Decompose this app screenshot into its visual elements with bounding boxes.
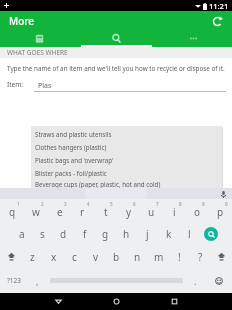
staticText: 8 xyxy=(179,201,182,207)
button[interactable]: Emoji xyxy=(206,268,232,293)
staticText: g xyxy=(102,227,109,241)
staticText: p xyxy=(217,205,224,219)
button[interactable]: Plastic bags and 'overwrap' xyxy=(31,153,222,166)
staticText: 0 xyxy=(225,201,228,207)
staticText: Type the name of an item and we'll tell … xyxy=(7,64,225,73)
staticText: k xyxy=(166,227,172,241)
staticText: 11:21 xyxy=(209,1,229,11)
staticText: i xyxy=(173,205,176,219)
button[interactable]: f xyxy=(74,222,95,245)
staticText: Blister packs - foil/plastic xyxy=(35,169,107,177)
button[interactable]: ? xyxy=(190,245,211,268)
staticText: t xyxy=(104,205,108,219)
staticText: ?123 xyxy=(7,276,21,285)
button[interactable]: t xyxy=(94,199,117,222)
button[interactable]: Back xyxy=(29,293,87,310)
button[interactable]: v xyxy=(85,245,106,268)
button[interactable]: n xyxy=(127,245,148,268)
staticText: c xyxy=(72,250,77,264)
button[interactable]: Schedule xyxy=(0,30,78,47)
staticText: v xyxy=(93,250,99,264)
button[interactable]: Blister packs - foil/plastic xyxy=(31,166,222,179)
button[interactable]: c xyxy=(64,245,85,268)
button[interactable]: w xyxy=(24,199,48,222)
button[interactable]: Shift xyxy=(0,245,22,268)
button[interactable]: Straws and plastic utensils xyxy=(31,127,222,140)
button[interactable]: u xyxy=(140,199,163,222)
button[interactable]: m xyxy=(148,245,169,268)
button[interactable]: Home xyxy=(87,293,145,310)
staticText: . xyxy=(194,275,197,287)
button[interactable]: Voice input xyxy=(218,189,228,199)
staticText: w xyxy=(32,205,40,219)
button[interactable]: Beverage cups (paper, plastic, hot and c… xyxy=(31,179,222,188)
button[interactable]: ! xyxy=(169,245,190,268)
staticText: l xyxy=(188,227,191,241)
staticText: s xyxy=(40,227,45,241)
staticText: d xyxy=(60,227,67,241)
staticText: f xyxy=(83,227,87,241)
staticText: WHAT GOES WHERE xyxy=(7,48,68,57)
staticText: 9 xyxy=(202,201,205,207)
staticText: 6 xyxy=(133,201,136,207)
button[interactable]: q xyxy=(0,199,24,222)
button[interactable]: o xyxy=(186,199,209,222)
button[interactable]: . xyxy=(185,268,206,293)
staticText: 4 xyxy=(87,201,90,207)
button[interactable]: j xyxy=(137,222,158,245)
button[interactable]: Search xyxy=(200,222,221,245)
staticText: More xyxy=(9,14,35,28)
staticText: Plas xyxy=(38,81,52,91)
button[interactable]: , xyxy=(27,268,48,293)
button[interactable]: i xyxy=(163,199,186,222)
staticText: 1 xyxy=(17,201,20,207)
button[interactable]: k xyxy=(158,222,179,245)
button[interactable]: Refresh xyxy=(209,13,225,29)
staticText: 3 xyxy=(64,201,67,207)
staticText: ? xyxy=(198,250,203,264)
staticText: , xyxy=(36,275,39,287)
staticText: Plastic bags and 'overwrap' xyxy=(35,156,114,164)
button[interactable]: More xyxy=(155,30,232,47)
button[interactable]: p xyxy=(209,199,232,222)
button[interactable]: a xyxy=(11,222,32,245)
button[interactable]: h xyxy=(116,222,137,245)
staticText: 2 xyxy=(41,201,44,207)
button[interactable]: e xyxy=(48,199,71,222)
button[interactable]: ?123 xyxy=(0,268,27,293)
staticText: 7 xyxy=(156,201,159,207)
staticText: Beverage cups (paper, plastic, hot and c… xyxy=(35,180,161,188)
button[interactable]: d xyxy=(53,222,74,245)
button[interactable]: r xyxy=(71,199,94,222)
staticText: y xyxy=(126,205,132,219)
button[interactable]: x xyxy=(43,245,64,268)
button[interactable]: z xyxy=(22,245,43,268)
button[interactable]: Space xyxy=(48,268,185,293)
staticText: r xyxy=(80,205,85,219)
button[interactable]: Recent apps xyxy=(145,293,203,310)
staticText: Clothes hangers (plastic) xyxy=(35,143,107,151)
staticText: m xyxy=(154,250,164,264)
button[interactable]: Search xyxy=(78,30,155,47)
staticText: q xyxy=(9,205,16,219)
button[interactable]: l xyxy=(179,222,200,245)
button[interactable]: g xyxy=(95,222,116,245)
button[interactable]: s xyxy=(32,222,53,245)
staticText: 5 xyxy=(110,201,113,207)
button[interactable]: y xyxy=(117,199,140,222)
staticText: h xyxy=(123,227,130,241)
button[interactable]: Shift xyxy=(211,245,232,268)
staticText: Item: xyxy=(7,80,24,89)
staticText: Straws and plastic utensils xyxy=(35,130,112,138)
staticText: ! xyxy=(178,250,181,264)
button[interactable]: Clothes hangers (plastic) xyxy=(31,140,222,153)
staticText: o xyxy=(194,205,201,219)
staticText: e xyxy=(57,205,63,219)
staticText: z xyxy=(30,250,35,264)
button[interactable]: b xyxy=(106,245,127,268)
staticText: n xyxy=(134,250,141,264)
staticText: a xyxy=(19,227,25,241)
staticText: x xyxy=(51,250,57,264)
staticText: b xyxy=(113,250,120,264)
staticText: j xyxy=(146,227,149,241)
